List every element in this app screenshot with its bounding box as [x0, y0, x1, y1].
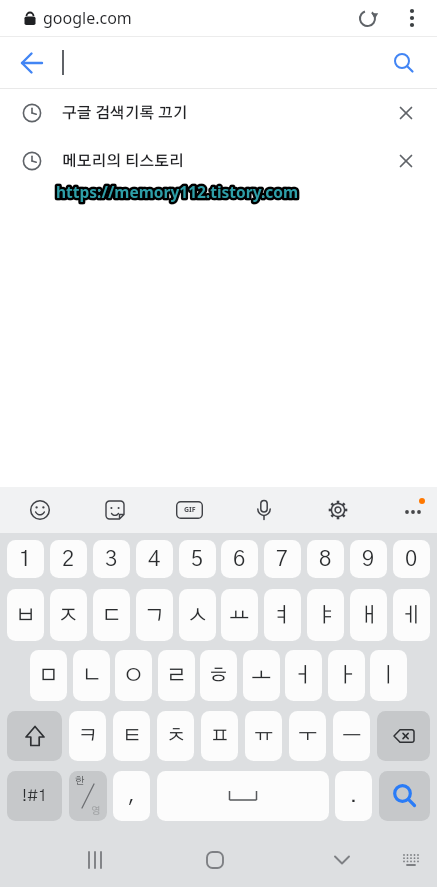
button[interactable] — [322, 494, 354, 526]
staticText: 2 — [62, 548, 75, 570]
staticText: ㅇ — [123, 665, 144, 686]
button[interactable]: . — [335, 771, 372, 821]
button[interactable] — [7, 711, 62, 761]
button[interactable]: ㅂ — [7, 589, 44, 641]
staticText: 0 — [405, 548, 418, 570]
staticText: ㅎ — [208, 665, 229, 686]
button[interactable]: ㅜ — [289, 711, 326, 761]
staticText: ㅁ — [38, 665, 59, 686]
button[interactable] — [379, 771, 430, 821]
button[interactable] — [191, 836, 239, 884]
button[interactable] — [350, 1, 384, 35]
staticText: google.com — [43, 7, 132, 29]
button[interactable]: 0 — [393, 540, 430, 578]
button[interactable]: ㅅ — [179, 589, 216, 641]
button[interactable]: 9 — [350, 540, 387, 578]
button[interactable]: ㅓ — [285, 650, 322, 701]
button[interactable]: ㅌ — [113, 711, 150, 761]
button[interactable] — [381, 40, 426, 85]
button[interactable]: ㄴ — [73, 650, 110, 701]
button[interactable]: 구글 검색기록 끄기 — [0, 89, 437, 137]
button[interactable]: GIF — [173, 494, 205, 526]
button[interactable]: 8 — [307, 540, 344, 578]
button[interactable]: ㅛ — [221, 589, 258, 641]
button[interactable]: ㅡ — [333, 711, 370, 761]
button[interactable]: 2 — [50, 540, 87, 578]
staticText: https://memory112.tistory.com — [56, 181, 299, 202]
staticText: ㅊ — [166, 726, 186, 746]
button[interactable]: ㅋ — [69, 711, 106, 761]
button[interactable]: ㅕ — [264, 589, 301, 641]
staticText: ㅐ — [358, 605, 379, 626]
button[interactable]: ㅔ — [393, 589, 430, 641]
button[interactable]: ㄷ — [93, 589, 130, 641]
staticText: , — [128, 786, 135, 806]
staticText: ㅕ — [272, 605, 293, 626]
button[interactable] — [318, 836, 366, 884]
button[interactable]: ㄹ — [158, 650, 195, 701]
button[interactable] — [397, 494, 429, 526]
button[interactable]: 4 — [136, 540, 173, 578]
button[interactable]: 6 — [221, 540, 258, 578]
button[interactable] — [99, 494, 131, 526]
staticText: ㅔ — [401, 605, 422, 626]
staticText: ㅛ — [229, 605, 250, 626]
button[interactable]: ㄱ — [136, 589, 173, 641]
button[interactable]: , — [113, 771, 150, 821]
staticText: ㅑ — [315, 605, 336, 626]
staticText: ㄴ — [81, 665, 102, 686]
staticText: 메모리의 티스토리 — [62, 154, 184, 169]
button[interactable]: ㅈ — [50, 589, 87, 641]
button[interactable] — [382, 137, 430, 185]
button[interactable] — [377, 711, 430, 761]
button[interactable] — [248, 494, 280, 526]
button[interactable] — [24, 494, 56, 526]
button[interactable]: ㅎ — [200, 650, 237, 701]
staticText: 영 — [91, 806, 101, 816]
button[interactable]: 메모리의 티스토리 — [0, 137, 437, 185]
staticText: https://memory112.tistory.com — [56, 181, 299, 202]
button[interactable]: 5 — [179, 540, 216, 578]
button[interactable]: ㅁ — [30, 650, 67, 701]
staticText: ㅋ — [78, 726, 98, 746]
button[interactable] — [157, 771, 329, 821]
staticText: 9 — [362, 548, 375, 570]
staticText: ㅈ — [58, 605, 79, 626]
staticText: ㅏ — [336, 665, 357, 686]
button[interactable]: ㅐ — [350, 589, 387, 641]
button[interactable]: ㅏ — [328, 650, 365, 701]
button[interactable]: ㅗ — [243, 650, 280, 701]
staticText: ㅂ — [15, 605, 36, 626]
button[interactable] — [397, 0, 427, 36]
button[interactable]: ㅇ — [115, 650, 152, 701]
staticText: GIF — [184, 505, 196, 515]
button[interactable]: 7 — [264, 540, 301, 578]
button[interactable]: !#1 — [7, 771, 62, 821]
staticText: 8 — [319, 548, 332, 570]
staticText: ㅌ — [122, 726, 142, 746]
staticText: 6 — [233, 548, 246, 570]
staticText: ㄷ — [101, 605, 122, 626]
staticText: 7 — [276, 548, 289, 570]
button[interactable]: ㅊ — [157, 711, 194, 761]
button[interactable] — [71, 836, 119, 884]
staticText: ㅓ — [293, 665, 314, 686]
button[interactable]: 1 — [7, 540, 44, 578]
button[interactable]: 한 — [69, 771, 107, 821]
button[interactable] — [9, 40, 54, 85]
button[interactable]: 3 — [93, 540, 130, 578]
button[interactable]: google.com — [0, 0, 437, 36]
button[interactable]: ㅑ — [307, 589, 344, 641]
button[interactable] — [389, 838, 433, 882]
staticText: 구글 검색기록 끄기 — [62, 106, 188, 121]
staticText: ㄱ — [144, 605, 165, 626]
staticText: ㅗ — [251, 665, 272, 686]
staticText: 3 — [105, 548, 118, 570]
staticText: ㅣ — [378, 665, 399, 686]
staticText: 1 — [19, 548, 32, 570]
button[interactable]: ㅍ — [201, 711, 238, 761]
staticText: 4 — [148, 548, 161, 570]
button[interactable] — [382, 89, 430, 137]
button[interactable]: ㅠ — [245, 711, 282, 761]
button[interactable]: ㅣ — [370, 650, 407, 701]
